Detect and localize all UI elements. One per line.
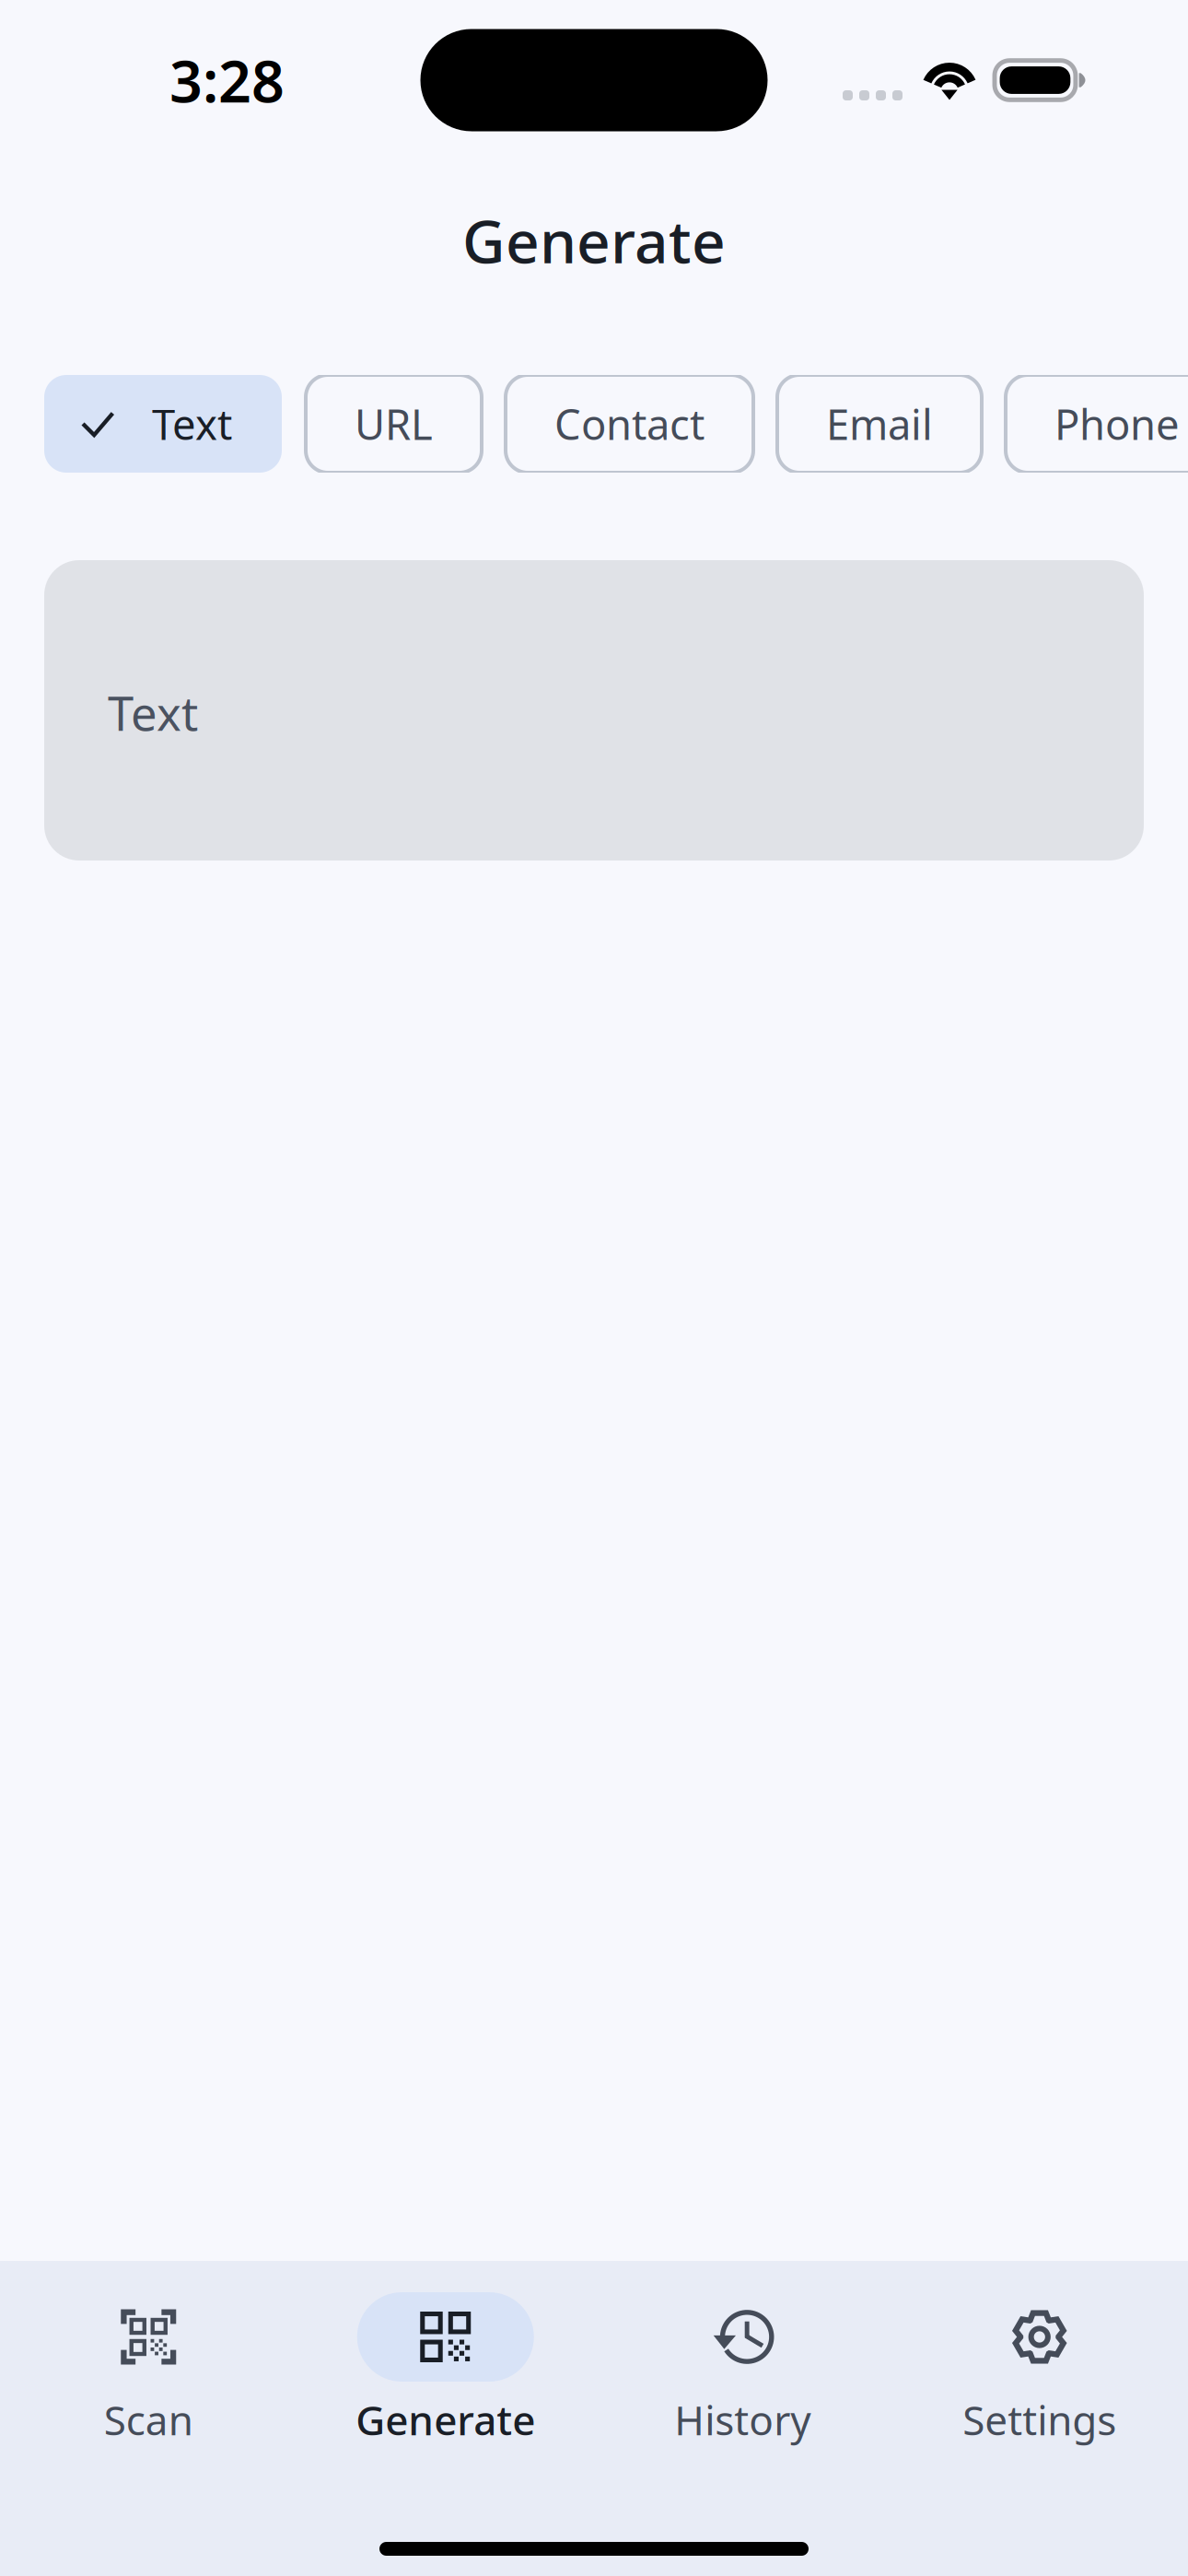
staticText: Generate [462, 201, 726, 280]
button[interactable]: URL [306, 375, 482, 473]
staticText: URL [355, 396, 433, 452]
staticText: Text [108, 682, 198, 744]
staticText: Scan [104, 2393, 193, 2446]
button[interactable]: Phone [1006, 375, 1188, 473]
staticText: Email [826, 396, 933, 452]
staticText: History [674, 2393, 811, 2446]
button[interactable]: Text [0, 560, 1188, 861]
staticText: Settings [963, 2393, 1116, 2446]
button[interactable]: Settings [891, 2292, 1188, 2446]
staticText: Contact [554, 396, 705, 452]
button[interactable]: History [594, 2292, 891, 2446]
staticText: Text [152, 396, 232, 452]
staticText: Phone [1054, 396, 1180, 452]
button[interactable]: Email [777, 375, 982, 473]
staticText: Generate [356, 2393, 535, 2446]
staticText: 3:28 [169, 42, 285, 118]
button[interactable]: Contact [506, 375, 753, 473]
button[interactable]: Text [44, 375, 282, 473]
button[interactable]: Scan [0, 2292, 297, 2446]
button[interactable]: Generate [297, 2292, 594, 2446]
